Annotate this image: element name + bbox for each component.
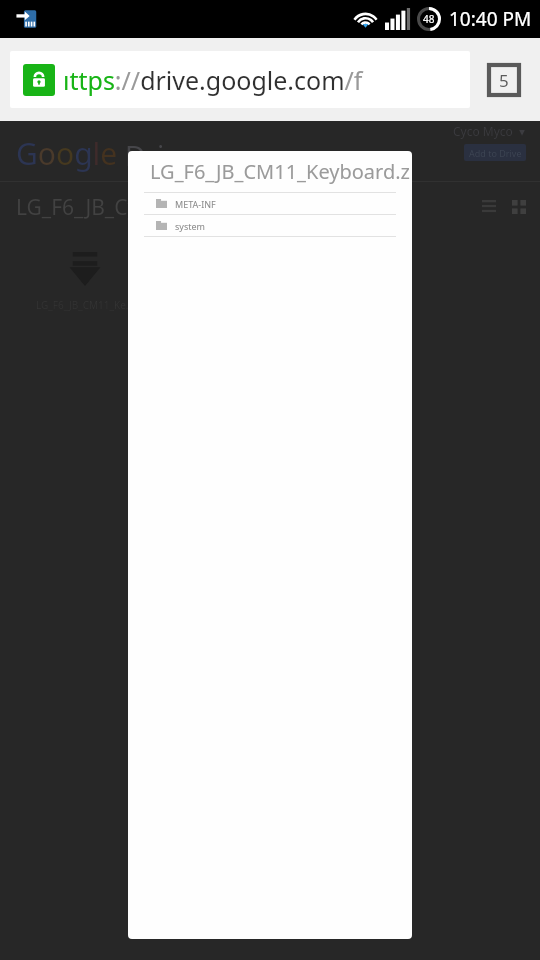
staticText: LG_F6_JB_Cyanog <box>16 193 189 222</box>
staticText: Google <box>16 133 118 174</box>
button[interactable]: system <box>128 215 412 236</box>
staticText: 48 <box>423 12 435 26</box>
staticText: 5 <box>499 69 509 92</box>
staticText: LG_F6_JB_CM11_Ke... <box>36 298 134 312</box>
staticText: ıttps://drive.google.com/f <box>63 63 363 97</box>
staticText: Add to Drive <box>469 147 522 159</box>
staticText: Cyco Myco ▾ <box>453 123 526 139</box>
button[interactable]: ıttps://drive.google.com/f <box>10 51 470 108</box>
button[interactable]: Add to Drive <box>464 144 526 161</box>
staticText: META-INF <box>175 198 216 210</box>
staticText: 10:40 PM <box>449 6 532 32</box>
staticText: LG_F6_JB_CM11_Keyboard.zip : <box>150 158 412 185</box>
staticText: Drive <box>125 136 195 174</box>
button[interactable]: Tabs, 5 open <box>482 58 526 102</box>
button[interactable]: META-INF <box>128 193 412 214</box>
staticText: system <box>175 220 205 232</box>
